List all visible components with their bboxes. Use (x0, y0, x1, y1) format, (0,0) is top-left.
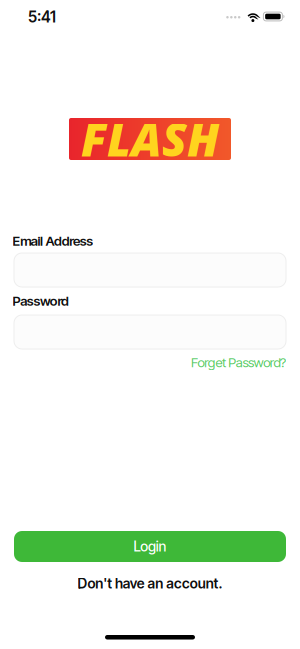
button[interactable]: Don't have an account. (77, 562, 222, 589)
staticText: Password (12, 293, 69, 309)
staticText: Login (133, 538, 167, 555)
button[interactable]: Forget Password? (191, 356, 286, 369)
staticText: Don't have an account. (77, 575, 222, 592)
staticText: 5:41 (28, 8, 56, 26)
staticText: Forget Password? (191, 354, 286, 370)
staticText: Email Address (12, 233, 93, 249)
button[interactable]: Login (14, 531, 286, 562)
staticText: FLASH (81, 109, 219, 169)
